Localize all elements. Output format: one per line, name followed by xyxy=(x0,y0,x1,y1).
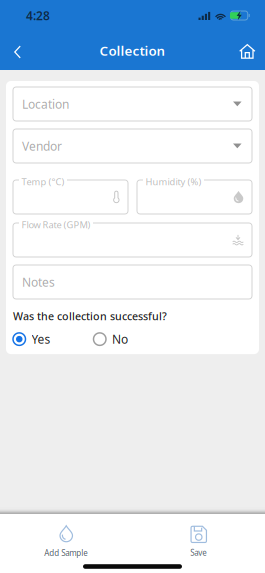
staticText: Humidity (%) xyxy=(145,175,201,188)
button[interactable]: No xyxy=(93,331,128,347)
staticText: Notes xyxy=(22,274,55,290)
staticText: 4:28 xyxy=(26,7,50,23)
button[interactable]: Location xyxy=(13,87,252,121)
staticText: Add Sample xyxy=(44,548,88,558)
button[interactable]: Save xyxy=(132,525,265,558)
button[interactable]: Home xyxy=(227,36,265,65)
staticText: No xyxy=(112,331,128,347)
staticText: Flow Rate (GPM) xyxy=(21,218,90,231)
staticText: Vendor xyxy=(22,138,62,154)
staticText: Save xyxy=(190,547,207,558)
staticText: Temp (°C) xyxy=(21,175,64,188)
staticText: Collection xyxy=(99,42,165,59)
button[interactable]: Add Sample xyxy=(0,525,132,558)
button[interactable]: Yes xyxy=(13,331,50,347)
staticText: Location xyxy=(22,96,69,112)
button[interactable]: Vendor xyxy=(13,129,252,163)
staticText: Was the collection successful? xyxy=(13,309,167,323)
staticText: Yes xyxy=(31,331,50,347)
button[interactable]: Back xyxy=(0,35,33,66)
